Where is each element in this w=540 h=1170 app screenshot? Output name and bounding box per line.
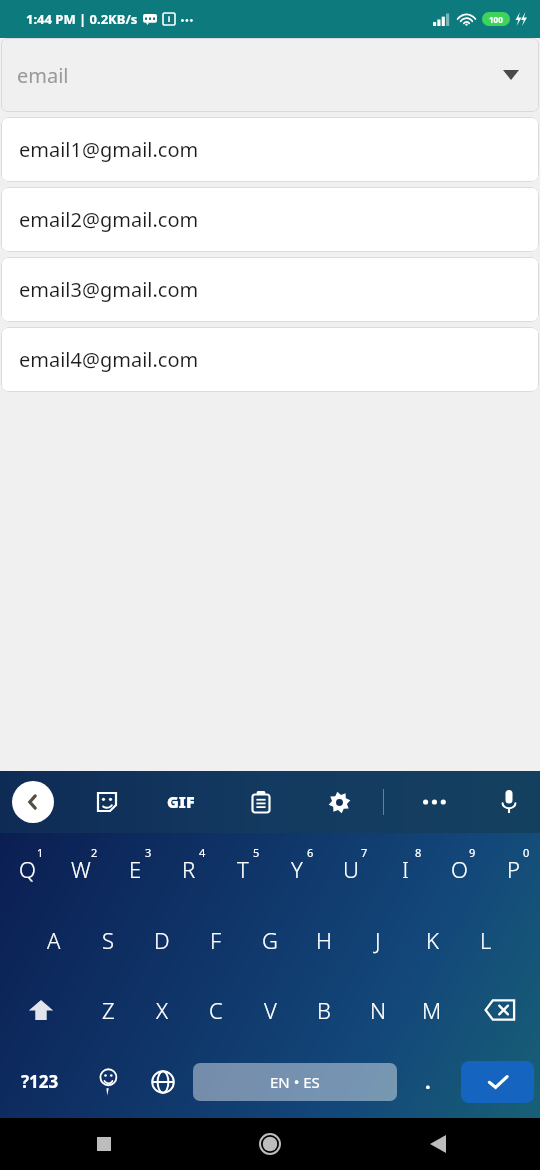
button[interactable]: U	[324, 833, 378, 905]
button[interactable]: GIF	[155, 781, 207, 823]
button[interactable]: Stickers	[86, 781, 128, 823]
staticText: Z	[102, 995, 115, 1025]
button[interactable]: email1@gmail.com	[1, 117, 539, 182]
button[interactable]: M	[405, 975, 459, 1045]
button[interactable]: Clipboard	[240, 781, 282, 823]
button[interactable]: A	[27, 905, 81, 975]
button[interactable]: Back	[12, 781, 54, 823]
staticText: email	[17, 62, 69, 89]
staticText: 100	[489, 14, 503, 25]
staticText: email4@gmail.com	[19, 346, 199, 373]
staticText: V	[264, 995, 277, 1025]
staticText: G	[262, 925, 278, 955]
staticText: 1:44 PM | 0.2KB/s	[26, 10, 138, 28]
staticText: email1@gmail.com	[19, 136, 199, 163]
button[interactable]: K	[405, 905, 459, 975]
button[interactable]: email	[1, 38, 539, 112]
staticText: 6	[307, 845, 314, 860]
staticText: R	[182, 854, 196, 884]
staticText: N	[370, 995, 387, 1025]
staticText: C	[209, 995, 223, 1025]
button[interactable]: email2@gmail.com	[1, 187, 539, 252]
staticText: 8	[415, 845, 422, 860]
staticText: P	[507, 854, 520, 884]
button[interactable]: S	[81, 905, 135, 975]
button[interactable]: ?123	[0, 1045, 80, 1118]
button[interactable]: Y	[270, 833, 324, 905]
staticText: GIF	[167, 791, 195, 813]
staticText: M	[422, 995, 442, 1025]
button[interactable]: Emoji	[80, 1045, 135, 1118]
staticText: 0	[523, 845, 530, 860]
button[interactable]: Recents	[0, 1118, 180, 1170]
button[interactable]: B	[297, 975, 351, 1045]
staticText: E	[129, 854, 142, 884]
button[interactable]: Voice input	[488, 781, 530, 823]
button[interactable]: .	[400, 1045, 455, 1118]
button[interactable]: Q	[0, 833, 54, 905]
staticText: Y	[291, 854, 303, 884]
staticText: S	[102, 925, 115, 955]
button[interactable]: J	[351, 905, 405, 975]
button[interactable]: R	[162, 833, 216, 905]
staticText: X	[156, 995, 169, 1025]
button[interactable]: I	[378, 833, 432, 905]
button[interactable]: W	[54, 833, 108, 905]
button[interactable]: Shift	[0, 975, 81, 1045]
staticText: EN • ES	[270, 1072, 320, 1092]
button[interactable]: N	[351, 975, 405, 1045]
button[interactable]: G	[243, 905, 297, 975]
staticText: O	[451, 854, 468, 884]
staticText: I	[402, 854, 409, 884]
staticText: A	[47, 925, 61, 955]
button[interactable]: H	[297, 905, 351, 975]
staticText: .	[425, 1068, 431, 1095]
staticText: H	[316, 925, 332, 955]
button[interactable]: EN • ES	[193, 1063, 397, 1101]
staticText: 7	[361, 845, 368, 860]
staticText: L	[480, 925, 492, 955]
staticText: D	[154, 925, 170, 955]
button[interactable]: email3@gmail.com	[1, 257, 539, 322]
staticText: W	[71, 854, 91, 884]
button[interactable]: Enter	[461, 1061, 534, 1103]
staticText: T	[237, 854, 249, 884]
staticText: ?123	[21, 1070, 59, 1093]
button[interactable]: V	[243, 975, 297, 1045]
button[interactable]: P	[486, 833, 540, 905]
button[interactable]: Settings	[318, 781, 360, 823]
button[interactable]: L	[459, 905, 513, 975]
staticText: Q	[19, 854, 36, 884]
staticText: F	[210, 925, 222, 955]
staticText: 9	[469, 845, 476, 860]
button[interactable]: F	[189, 905, 243, 975]
staticText: J	[375, 925, 381, 955]
staticText: 3	[145, 845, 152, 860]
staticText: email2@gmail.com	[19, 206, 199, 233]
staticText: 4	[199, 845, 206, 860]
button[interactable]: Back	[360, 1118, 540, 1170]
staticText: 1	[37, 845, 44, 860]
staticText: email3@gmail.com	[19, 276, 199, 303]
button[interactable]: email4@gmail.com	[1, 327, 539, 392]
button[interactable]: Home	[180, 1118, 360, 1170]
button[interactable]: E	[108, 833, 162, 905]
staticText: B	[317, 995, 331, 1025]
staticText: 2	[91, 845, 98, 860]
button[interactable]: T	[216, 833, 270, 905]
button[interactable]: D	[135, 905, 189, 975]
staticText: K	[426, 925, 439, 955]
button[interactable]: Backspace	[459, 975, 540, 1045]
button[interactable]: More options	[412, 780, 456, 824]
button[interactable]: Z	[81, 975, 135, 1045]
staticText: U	[343, 854, 359, 884]
button[interactable]: C	[189, 975, 243, 1045]
button[interactable]: O	[432, 833, 486, 905]
button[interactable]: Change language	[135, 1045, 190, 1118]
staticText: 5	[253, 845, 260, 860]
button[interactable]: X	[135, 975, 189, 1045]
